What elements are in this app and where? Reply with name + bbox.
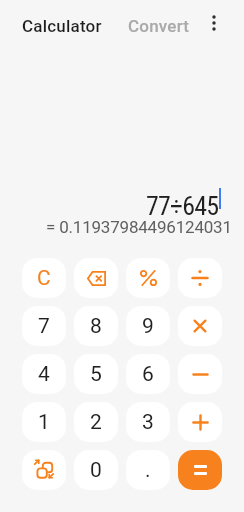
staticText: 7 <box>38 314 50 339</box>
button[interactable]: C <box>22 258 66 298</box>
button[interactable]: Calculator <box>22 16 102 36</box>
button[interactable]: 5 <box>74 354 118 394</box>
staticText: = 0.11937984496124031 <box>46 217 232 237</box>
button[interactable] <box>74 258 118 298</box>
button[interactable]: 7 <box>22 306 66 346</box>
button[interactable]: 4 <box>22 354 66 394</box>
staticText: 0 <box>90 458 102 483</box>
button[interactable] <box>178 258 222 298</box>
staticText: C <box>37 266 51 291</box>
staticText: 2 <box>90 410 102 435</box>
button[interactable]: 2 <box>74 402 118 442</box>
staticText: 4 <box>38 362 50 387</box>
staticText: Calculator <box>22 16 102 36</box>
staticText: Convert <box>128 16 190 36</box>
staticText: 77÷645 <box>146 191 219 221</box>
button[interactable]: 3 <box>126 402 170 442</box>
staticText: . <box>145 458 151 483</box>
button[interactable] <box>126 258 170 298</box>
staticText: 5 <box>90 362 102 387</box>
button[interactable]: Convert <box>128 16 190 36</box>
button[interactable]: . <box>126 450 170 490</box>
staticText: 1 <box>38 410 50 435</box>
button[interactable] <box>178 402 222 442</box>
button[interactable]: 6 <box>126 354 170 394</box>
staticText: 8 <box>90 314 102 339</box>
button[interactable] <box>178 306 222 346</box>
button[interactable]: 0 <box>74 450 118 490</box>
button[interactable]: 1 <box>22 402 66 442</box>
staticText: 6 <box>142 362 154 387</box>
button[interactable]: 9 <box>126 306 170 346</box>
button[interactable] <box>178 450 222 490</box>
button[interactable]: 8 <box>74 306 118 346</box>
staticText: 3 <box>142 410 154 435</box>
button[interactable] <box>22 450 66 490</box>
staticText: 9 <box>142 314 154 339</box>
button[interactable] <box>178 354 222 394</box>
button[interactable] <box>199 8 229 38</box>
